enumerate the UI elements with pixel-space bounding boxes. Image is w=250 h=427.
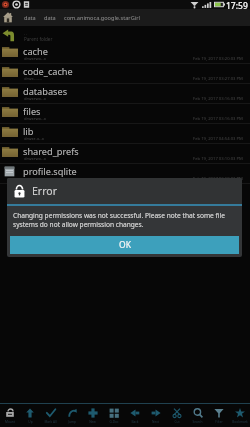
staticText: Next	[152, 420, 159, 424]
staticText: Mount	[5, 420, 15, 424]
staticText: ..	[24, 29, 27, 36]
button[interactable]: G-Doc	[103, 404, 124, 427]
staticText: code_cache	[23, 65, 73, 78]
staticText: lib	[23, 125, 34, 138]
staticText: Changing permissions was not successful.…	[13, 211, 237, 229]
staticText: Filter	[215, 420, 223, 424]
staticText: drwxrwx--x	[24, 56, 46, 62]
staticText: Search	[192, 420, 203, 424]
staticText: G-Doc	[109, 420, 119, 424]
button[interactable]: OK	[10, 236, 239, 254]
button[interactable]: data	[24, 14, 36, 22]
staticText: com.animoca.google.starGirl	[64, 14, 140, 22]
staticText: OK	[119, 239, 131, 251]
staticText: drwx------	[24, 76, 42, 82]
staticText: Feb 19, 2017 03:10:03 PM	[193, 176, 243, 182]
button[interactable]: shared_prefs	[0, 144, 250, 164]
staticText: Up	[28, 420, 33, 424]
button[interactable]: New	[82, 404, 103, 427]
staticText: drwxrwx--x	[24, 96, 46, 102]
button[interactable]: Mark All	[40, 404, 61, 427]
staticText: Feb 19, 2017 03:20:03 PM	[193, 56, 243, 62]
staticText: data	[24, 14, 36, 22]
button[interactable]: cache	[0, 44, 250, 64]
staticText: Feb 19, 2017 04:54:03 PM	[193, 136, 243, 142]
staticText: Feb 19, 2017 03:16:03 PM	[193, 96, 243, 102]
button[interactable]: Cut	[166, 404, 187, 427]
staticText: data	[44, 14, 56, 22]
button[interactable]: Bookmark	[229, 404, 250, 427]
staticText: drwxrwx--x	[24, 156, 46, 162]
staticText: files	[23, 105, 41, 118]
staticText: Feb 19, 2017 03:27:03 PM	[193, 76, 243, 82]
button[interactable]: profile.sqlite	[0, 164, 250, 184]
button[interactable]: Jump	[61, 404, 82, 427]
staticText: -rw-rw----	[24, 176, 43, 182]
staticText: Bookmark	[232, 420, 248, 424]
staticText: cache	[23, 45, 48, 58]
button[interactable]: databases	[0, 84, 250, 104]
button[interactable]: Mount	[0, 404, 20, 427]
staticText: New	[89, 420, 96, 424]
button[interactable]: Search	[187, 404, 208, 427]
staticText: Jump	[68, 420, 76, 424]
staticText: Parent folder	[24, 36, 53, 42]
staticText: 17:59	[226, 0, 248, 9]
button[interactable]: files	[0, 104, 250, 124]
button[interactable]: Filter	[208, 404, 229, 427]
staticText: Error	[32, 184, 57, 198]
button[interactable]: data	[44, 14, 56, 22]
button[interactable]: Up	[20, 404, 40, 427]
staticText: databases	[23, 85, 68, 98]
button[interactable]: ..	[0, 26, 250, 44]
button[interactable]: Back	[124, 404, 145, 427]
staticText: Cut	[174, 420, 180, 424]
staticText: profile.sqlite	[23, 165, 77, 178]
staticText: Feb 19, 2017 03:10:03 PM	[193, 156, 243, 162]
button[interactable]: lib	[0, 124, 250, 144]
button[interactable]: Next	[145, 404, 166, 427]
button[interactable]: Home	[2, 10, 14, 25]
staticText: Back	[131, 420, 139, 424]
staticText: drwxr-x--x	[24, 136, 45, 142]
staticText: Mark All	[44, 420, 57, 424]
button[interactable]: code_cache	[0, 64, 250, 84]
staticText: shared_prefs	[23, 145, 79, 158]
staticText: drwxrwx--x	[24, 116, 46, 122]
button[interactable]: com.animoca.google.starGirl	[64, 14, 140, 22]
staticText: Feb 19, 2017 03:16:03 PM	[193, 116, 243, 122]
